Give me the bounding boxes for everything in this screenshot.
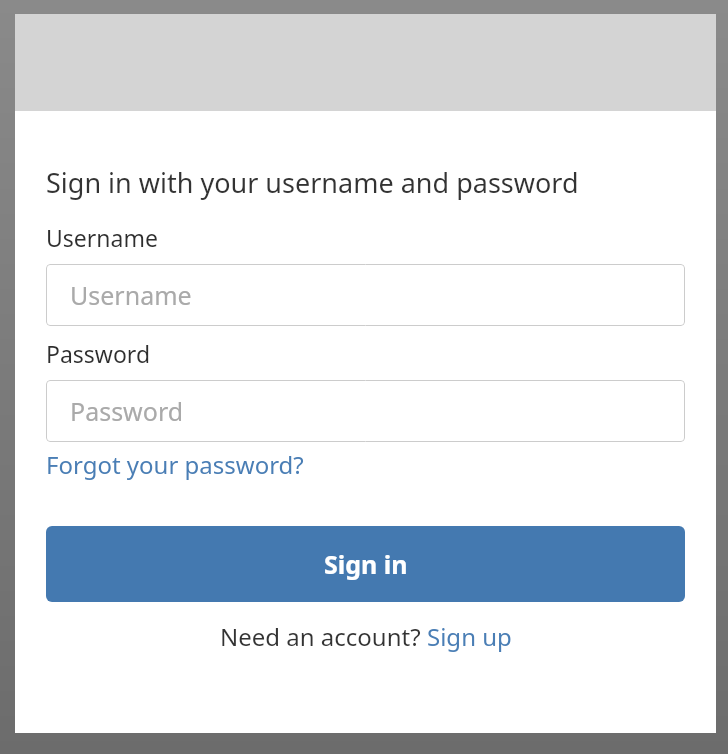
staticText: Password bbox=[46, 338, 151, 369]
staticText: Sign in with your username and password bbox=[46, 164, 579, 201]
staticText: Username bbox=[70, 278, 192, 312]
button[interactable]: Sign in bbox=[46, 526, 685, 602]
staticText: Forgot your password? bbox=[46, 448, 304, 481]
staticText: Password bbox=[70, 394, 184, 428]
button[interactable]: Password bbox=[46, 380, 685, 442]
staticText: Sign up bbox=[427, 620, 512, 653]
staticText: Sign in bbox=[324, 547, 408, 581]
button[interactable]: Username bbox=[46, 264, 685, 326]
staticText: Need an account? bbox=[220, 620, 427, 653]
staticText: Username bbox=[46, 222, 158, 253]
button[interactable]: Sign up bbox=[427, 620, 512, 653]
button[interactable]: Forgot your password? bbox=[46, 448, 304, 481]
